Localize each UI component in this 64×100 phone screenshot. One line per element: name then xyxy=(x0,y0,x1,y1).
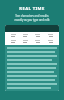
button[interactable]: Tool 8 xyxy=(44,39,57,44)
staticText: See characters and results exactly as yo… xyxy=(12,14,52,22)
button[interactable]: Tool 4 xyxy=(44,33,57,38)
button[interactable]: Tool 5 xyxy=(7,39,19,44)
button[interactable]: Tool 6 xyxy=(19,39,31,44)
button[interactable]: Tool 1 xyxy=(7,33,19,38)
button[interactable]: Tool 2 xyxy=(19,33,31,38)
button[interactable]: Tool 7 xyxy=(31,39,44,44)
button[interactable]: Tool 1 xyxy=(5,25,59,91)
button[interactable]: Tool 3 xyxy=(31,33,44,38)
staticText: REAL TIME xyxy=(19,6,45,12)
